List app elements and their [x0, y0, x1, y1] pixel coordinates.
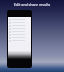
- button[interactable]: [8, 27, 31, 30]
- button[interactable]: [8, 21, 31, 24]
- button[interactable]: [8, 39, 31, 42]
- staticText: Edit and share results: [0, 2, 64, 7]
- button[interactable]: [8, 36, 31, 39]
- button[interactable]: [8, 18, 31, 21]
- button[interactable]: [8, 24, 31, 27]
- button[interactable]: [8, 33, 31, 36]
- button[interactable]: [8, 30, 31, 33]
